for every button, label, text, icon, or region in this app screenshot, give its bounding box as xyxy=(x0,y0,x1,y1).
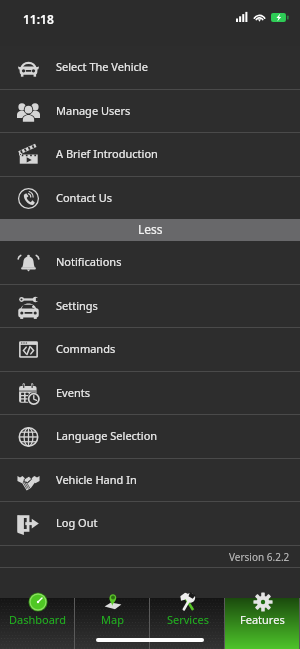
button[interactable]: Vehicle Hand In xyxy=(0,459,300,501)
button[interactable]: Log Out xyxy=(0,502,300,545)
staticText: Settings xyxy=(56,298,98,313)
staticText: Manage Users xyxy=(56,103,131,118)
staticText: Dashboard xyxy=(9,612,66,627)
staticText: A Brief Introduction xyxy=(56,146,158,161)
button[interactable]: Manage Users xyxy=(0,90,300,132)
button[interactable]: Dashboard xyxy=(0,590,75,649)
button[interactable]: Features xyxy=(225,590,300,649)
staticText: 11:18 xyxy=(23,11,54,27)
button[interactable]: Map xyxy=(75,590,150,649)
button[interactable]: Commands xyxy=(0,328,300,371)
button[interactable]: Less xyxy=(0,219,300,241)
staticText: Version 6.2.2 xyxy=(229,550,290,564)
staticText: Less xyxy=(138,221,163,237)
staticText: Contact Us xyxy=(56,190,112,205)
staticText: Log Out xyxy=(56,515,98,530)
staticText: Select The Vehicle xyxy=(56,59,148,74)
button[interactable]: Language Selection xyxy=(0,415,300,458)
staticText: Events xyxy=(56,385,90,400)
button[interactable]: A Brief Introduction xyxy=(0,133,300,176)
button[interactable]: Events xyxy=(0,372,300,414)
button[interactable]: Settings xyxy=(0,285,300,327)
button[interactable]: Select The Vehicle xyxy=(0,46,300,89)
button[interactable]: Notifications xyxy=(0,241,300,284)
button[interactable]: Services xyxy=(150,590,225,649)
staticText: Services xyxy=(167,612,209,627)
staticText: Features xyxy=(240,612,285,627)
staticText: Commands xyxy=(56,341,116,356)
staticText: Map xyxy=(101,612,124,627)
button[interactable]: Contact Us xyxy=(0,177,300,219)
staticText: Vehicle Hand In xyxy=(56,472,137,487)
staticText: Language Selection xyxy=(56,428,158,443)
staticText: Notifications xyxy=(56,254,122,269)
